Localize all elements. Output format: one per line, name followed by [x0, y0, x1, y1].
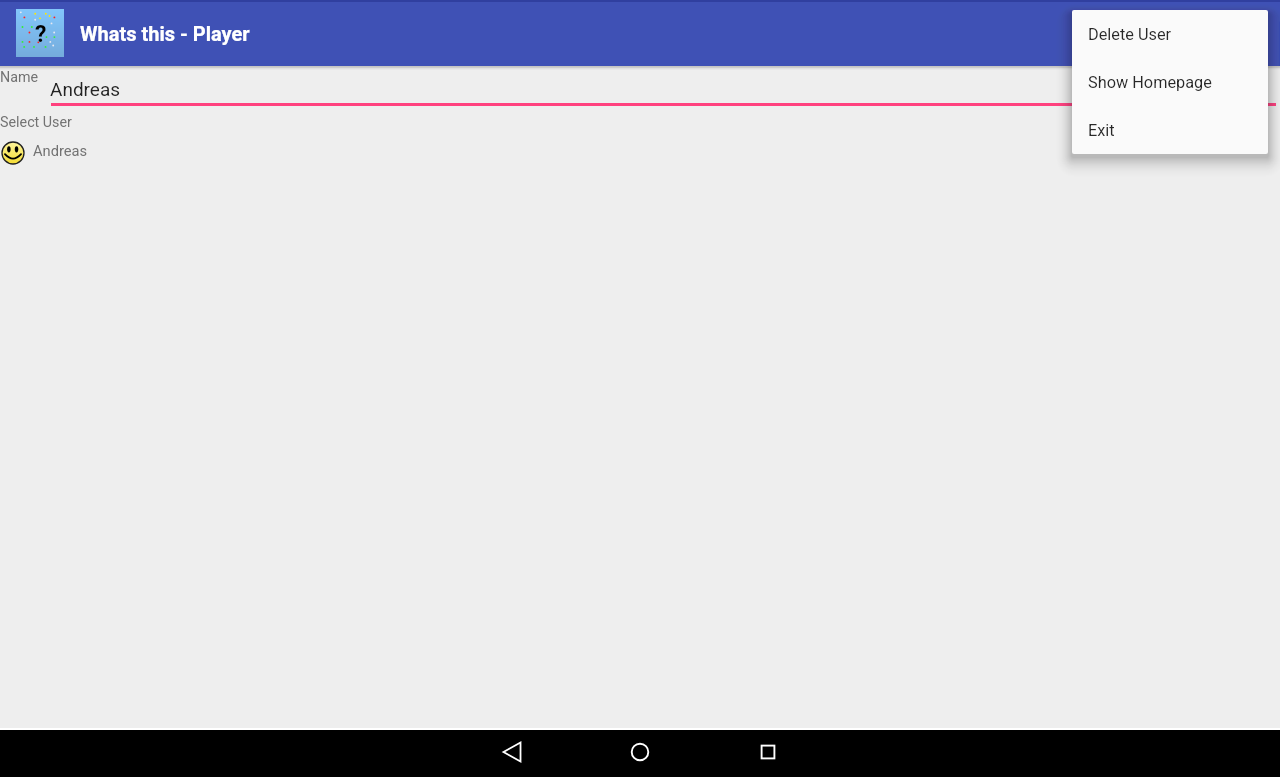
- staticText: Whats this - Player: [80, 22, 250, 45]
- button[interactable]: Delete User: [1072, 10, 1268, 58]
- button[interactable]: Andreas: [0, 138, 1280, 168]
- staticText: Andreas: [33, 142, 88, 159]
- staticText: Exit: [1088, 121, 1115, 140]
- button[interactable]: Exit: [1072, 106, 1268, 154]
- button[interactable]: Home: [624, 736, 656, 768]
- button[interactable]: Back: [496, 736, 528, 768]
- staticText: Show Homepage: [1088, 73, 1212, 92]
- button[interactable]: Recents: [752, 736, 784, 768]
- staticText: Select User: [0, 114, 72, 131]
- staticText: Delete User: [1088, 25, 1172, 44]
- button[interactable]: Show Homepage: [1072, 58, 1268, 106]
- staticText: ?: [35, 21, 47, 48]
- staticText: Name: [0, 69, 39, 86]
- button[interactable]: App icon, Whats this: [16, 9, 64, 57]
- button[interactable]: More options: [1232, 10, 1280, 58]
- staticText: Andreas: [50, 78, 121, 100]
- button[interactable]: Andreas: [50, 74, 1276, 106]
